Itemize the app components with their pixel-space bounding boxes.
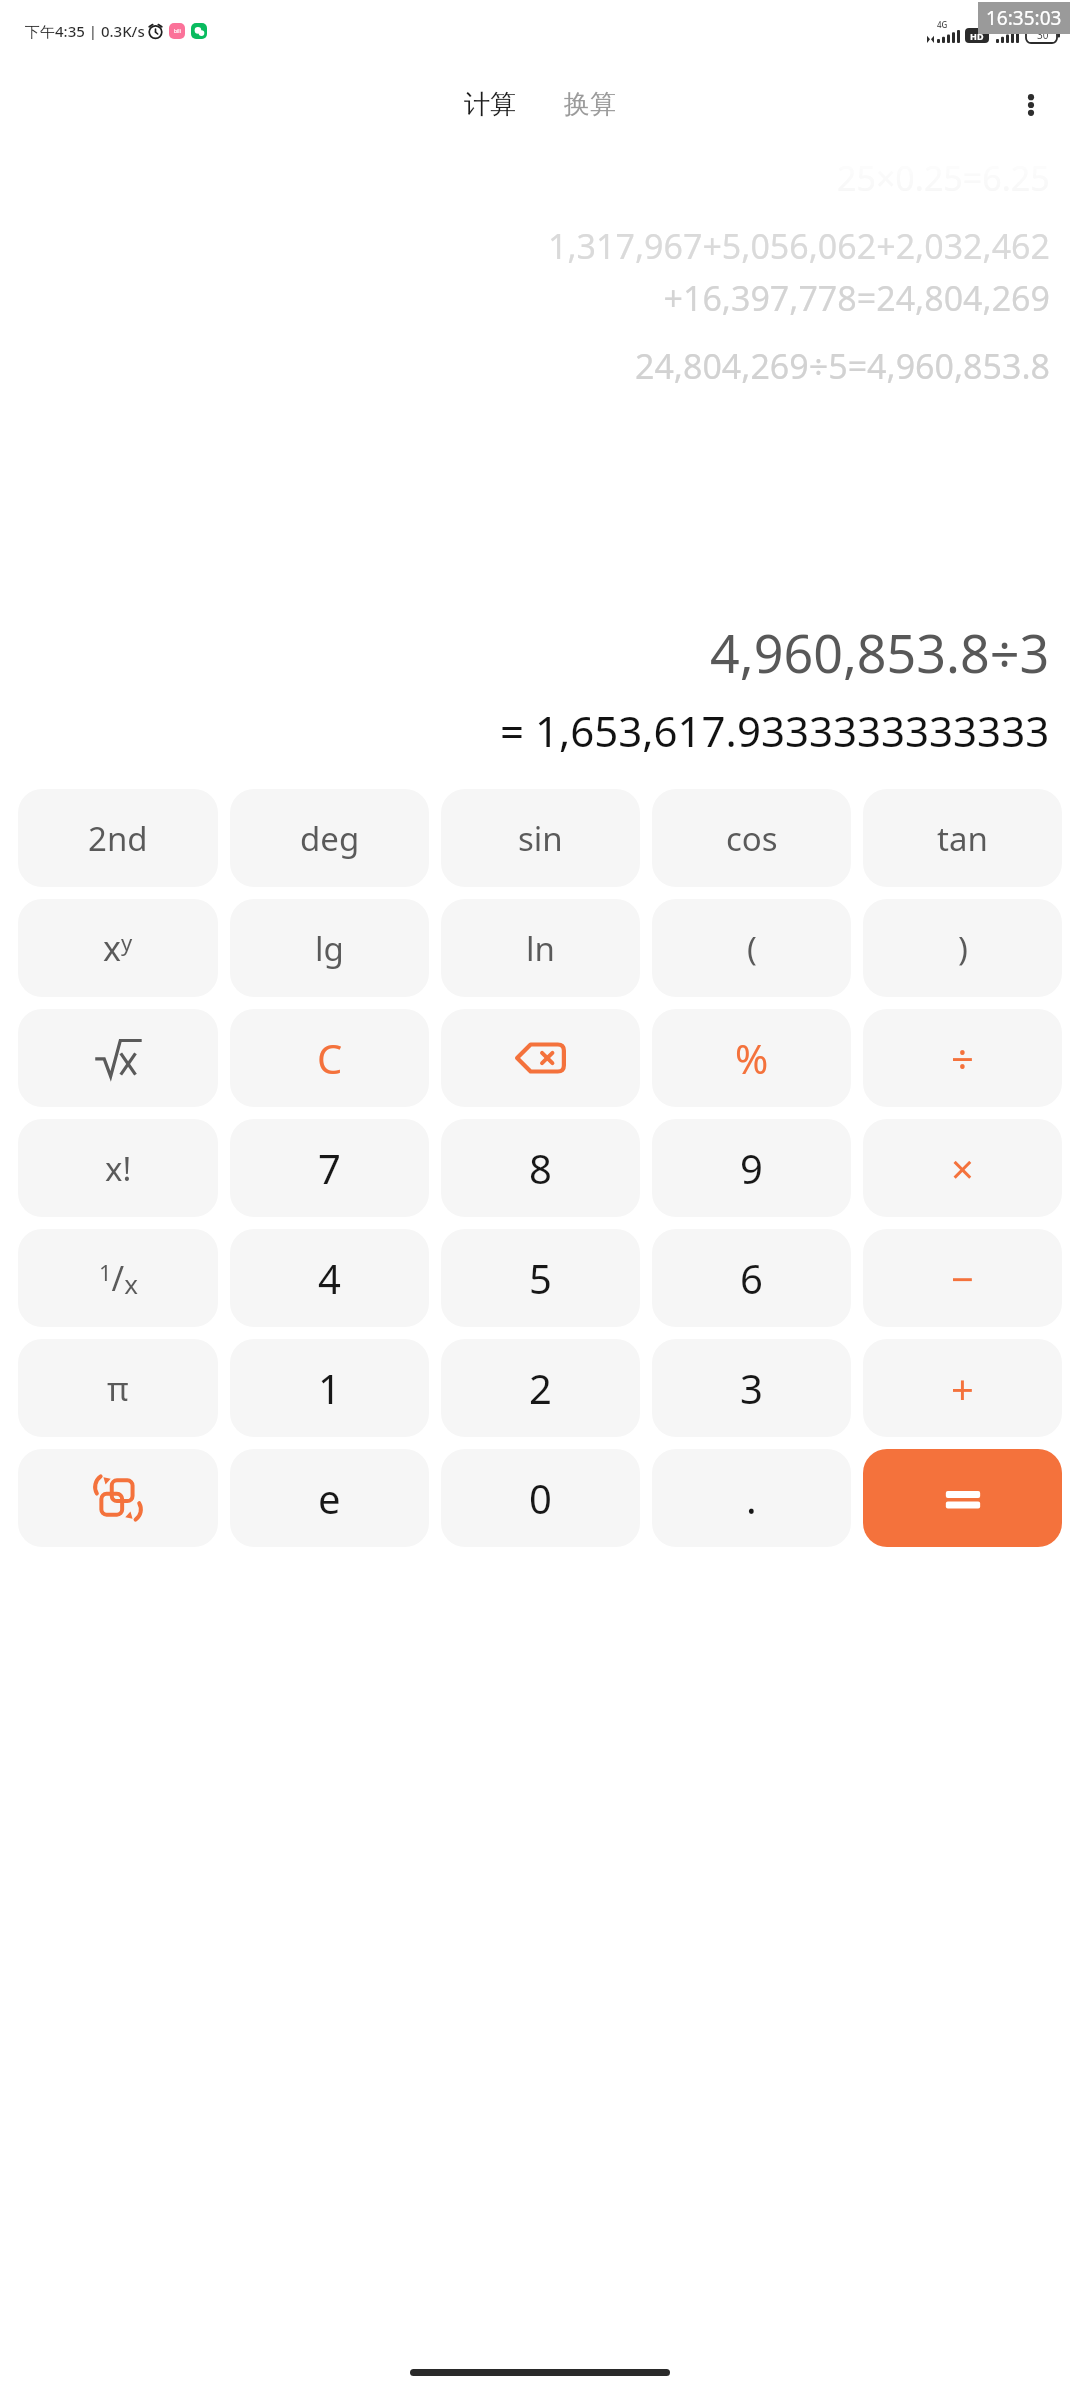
button[interactable]: xy [18, 899, 218, 997]
staticText: 8 [529, 1141, 552, 1195]
staticText: 下午4:35 | 0.3K/s [25, 21, 145, 41]
staticText: +16,397,778=24,804,269 [663, 275, 1050, 321]
staticText: 1 [318, 1361, 341, 1415]
staticText: tan [937, 816, 988, 861]
staticText: 4 [318, 1251, 341, 1305]
staticText: 换算 [564, 88, 616, 121]
button[interactable]: % [652, 1009, 851, 1107]
button[interactable]: Square root [18, 1009, 218, 1107]
staticText: 1/x [99, 1255, 138, 1302]
staticText: HD [970, 30, 984, 42]
staticText: 24,804,269÷5=4,960,853.8 [634, 343, 1050, 389]
button[interactable]: 3 [652, 1339, 851, 1437]
staticText: 1,317,967+5,056,062+2,032,462 [548, 223, 1050, 269]
staticText: 30 [1037, 28, 1049, 42]
staticText: 4,960,853.8÷3 [710, 617, 1050, 688]
button[interactable]: 换算 [554, 82, 626, 127]
staticText: % [735, 1031, 769, 1085]
button[interactable]: sin [441, 789, 640, 887]
button[interactable]: ( [652, 899, 851, 997]
staticText: C [317, 1031, 343, 1085]
button[interactable]: + [863, 1339, 1062, 1437]
staticText: 5 [529, 1251, 552, 1305]
button[interactable]: 0 [441, 1449, 640, 1547]
staticText: deg [300, 816, 360, 861]
button[interactable]: C [230, 1009, 429, 1107]
button[interactable]: − [863, 1229, 1062, 1327]
button[interactable]: More options [1004, 78, 1058, 132]
staticText: 0 [529, 1471, 552, 1525]
button[interactable]: ÷ [863, 1009, 1062, 1107]
button[interactable]: . [652, 1449, 851, 1547]
button[interactable]: 2nd [18, 789, 218, 887]
button[interactable]: 6 [652, 1229, 851, 1327]
button[interactable]: tan [863, 789, 1062, 887]
button[interactable]: 9 [652, 1119, 851, 1217]
staticText: 9 [740, 1141, 763, 1195]
button[interactable]: ) [863, 899, 1062, 997]
button[interactable]: 1 [230, 1339, 429, 1437]
staticText: × [951, 1141, 974, 1195]
button[interactable]: 7 [230, 1119, 429, 1217]
staticText: 6 [740, 1251, 763, 1305]
staticText: ln [526, 926, 555, 971]
staticText: 7 [318, 1141, 341, 1195]
staticText: bili [174, 28, 181, 35]
staticText: 4G [937, 19, 948, 30]
button[interactable]: Equals [863, 1449, 1062, 1547]
staticText: . [746, 1471, 757, 1525]
button[interactable]: × [863, 1119, 1062, 1217]
staticText: ÷ [951, 1031, 974, 1085]
button[interactable]: Swap units [18, 1449, 218, 1547]
staticText: − [951, 1251, 974, 1305]
button[interactable]: 8 [441, 1119, 640, 1217]
staticText: 2nd [88, 816, 148, 861]
button[interactable]: 2 [441, 1339, 640, 1437]
button[interactable]: e [230, 1449, 429, 1547]
staticText: = 1,653,617.9333333333333 [500, 702, 1050, 759]
button[interactable]: deg [230, 789, 429, 887]
button[interactable]: cos [652, 789, 851, 887]
staticText: 2 [529, 1361, 552, 1415]
button[interactable]: 5 [441, 1229, 640, 1327]
button[interactable]: π [18, 1339, 218, 1437]
button[interactable]: ln [441, 899, 640, 997]
staticText: 4G [1003, 19, 1014, 30]
button[interactable]: 1/x [18, 1229, 218, 1327]
staticText: 16:35:03 [986, 5, 1062, 31]
staticText: 3 [740, 1361, 763, 1415]
staticText: ) [958, 926, 968, 971]
staticText: x! [105, 1146, 132, 1191]
staticText: sin [518, 816, 563, 861]
button[interactable]: x! [18, 1119, 218, 1217]
button[interactable]: 4 [230, 1229, 429, 1327]
staticText: 计算 [464, 88, 516, 121]
button[interactable]: Backspace [441, 1009, 640, 1107]
staticText: xy [103, 925, 133, 971]
staticText: + [951, 1361, 974, 1415]
staticText: π [107, 1366, 129, 1411]
staticText: e [318, 1471, 341, 1525]
staticText: ( [747, 926, 757, 971]
button[interactable]: 计算 [454, 82, 526, 127]
staticText: cos [726, 816, 778, 861]
staticText: lg [315, 926, 344, 971]
button[interactable]: lg [230, 899, 429, 997]
